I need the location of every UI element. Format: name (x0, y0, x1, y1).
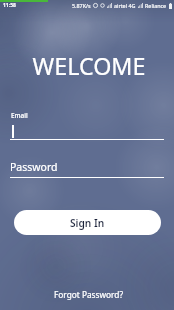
staticText: airtel 4G (114, 2, 136, 9)
staticText: 5.87K/s (72, 2, 91, 9)
staticText: Email (11, 111, 28, 120)
button[interactable]: Forgot Password? (54, 289, 124, 300)
staticText: WELCOME (4, 50, 174, 82)
staticText: Sign In (70, 216, 105, 230)
button[interactable]: Sign In (14, 210, 161, 235)
button[interactable]: Password (10, 160, 164, 178)
staticText: 11:58 (3, 2, 16, 9)
staticText: Password (10, 160, 58, 174)
staticText: Reliance (145, 2, 167, 9)
button[interactable]: Email (10, 111, 164, 140)
